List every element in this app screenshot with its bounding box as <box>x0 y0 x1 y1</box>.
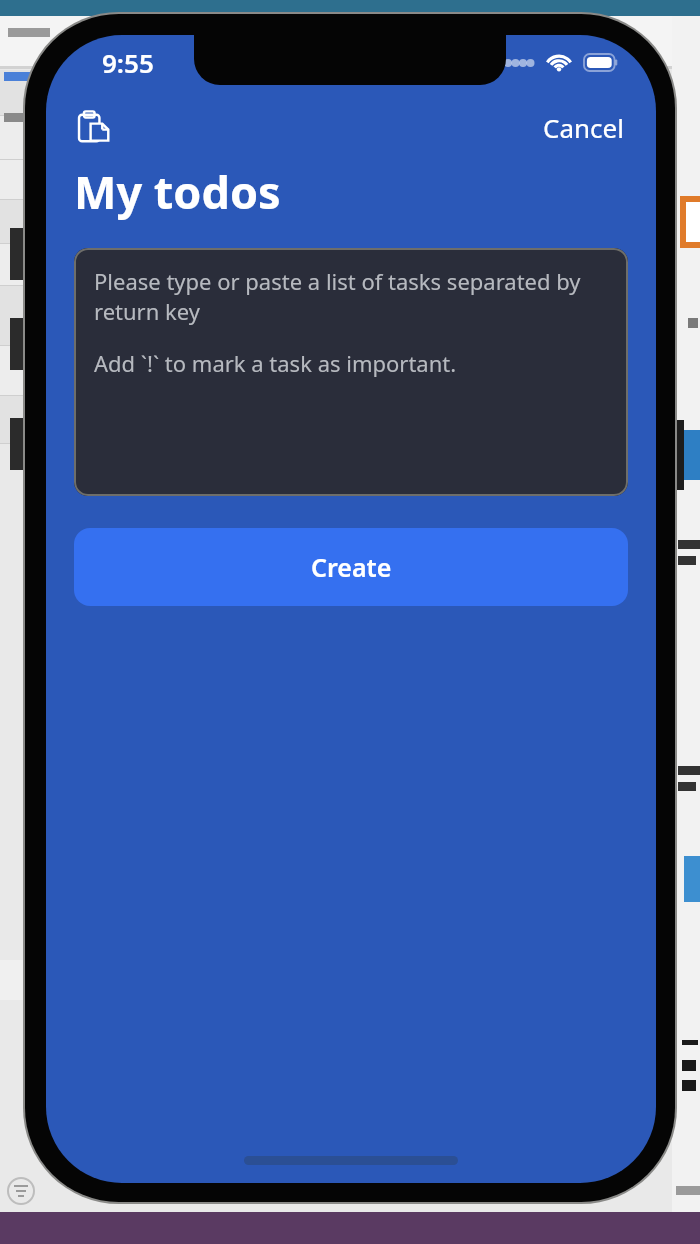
button[interactable]: Paste from clipboard <box>72 105 116 149</box>
staticText: Please type or paste a list of tasks sep… <box>94 266 608 326</box>
staticText: Create <box>311 550 392 584</box>
button[interactable]: Create <box>74 528 628 606</box>
staticText: My todos <box>74 161 281 222</box>
button[interactable]: Please type or paste a list of tasks sep… <box>74 248 628 496</box>
staticText: Cancel <box>543 110 624 145</box>
staticText: Add `!` to mark a task as important. <box>94 348 457 378</box>
button[interactable]: Cancel <box>537 106 630 149</box>
staticText: 9:55 <box>102 45 154 80</box>
